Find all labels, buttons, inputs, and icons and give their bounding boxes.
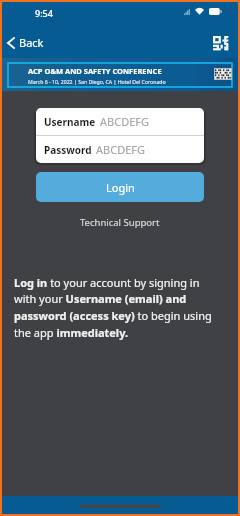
staticText: ABCDEFG xyxy=(96,142,145,157)
staticText: March 6 - 10, 2022 | San Diego, CA | Hot… xyxy=(28,78,166,85)
staticText: Log in to your account by signing in wit… xyxy=(14,275,218,340)
button[interactable]: Technical Support xyxy=(74,213,166,232)
staticText: 9:54 xyxy=(35,7,53,19)
staticText: Password xyxy=(44,143,92,157)
button[interactable]: Back xyxy=(2,26,54,60)
staticText: Back xyxy=(19,35,44,50)
staticText: Login xyxy=(106,180,135,195)
staticText: Username xyxy=(44,115,96,129)
staticText: ABCDEFG xyxy=(100,114,149,129)
button[interactable]: Username xyxy=(36,108,204,135)
button[interactable]: ACP O&M AND SAFETY CONFERENCE xyxy=(2,58,238,91)
button[interactable]: Password xyxy=(36,136,204,163)
button[interactable]: Login xyxy=(36,172,204,202)
staticText: ACP O&M AND SAFETY CONFERENCE xyxy=(28,66,162,76)
staticText: Technical Support xyxy=(80,216,160,229)
button[interactable]: Scan QR code xyxy=(203,26,238,60)
